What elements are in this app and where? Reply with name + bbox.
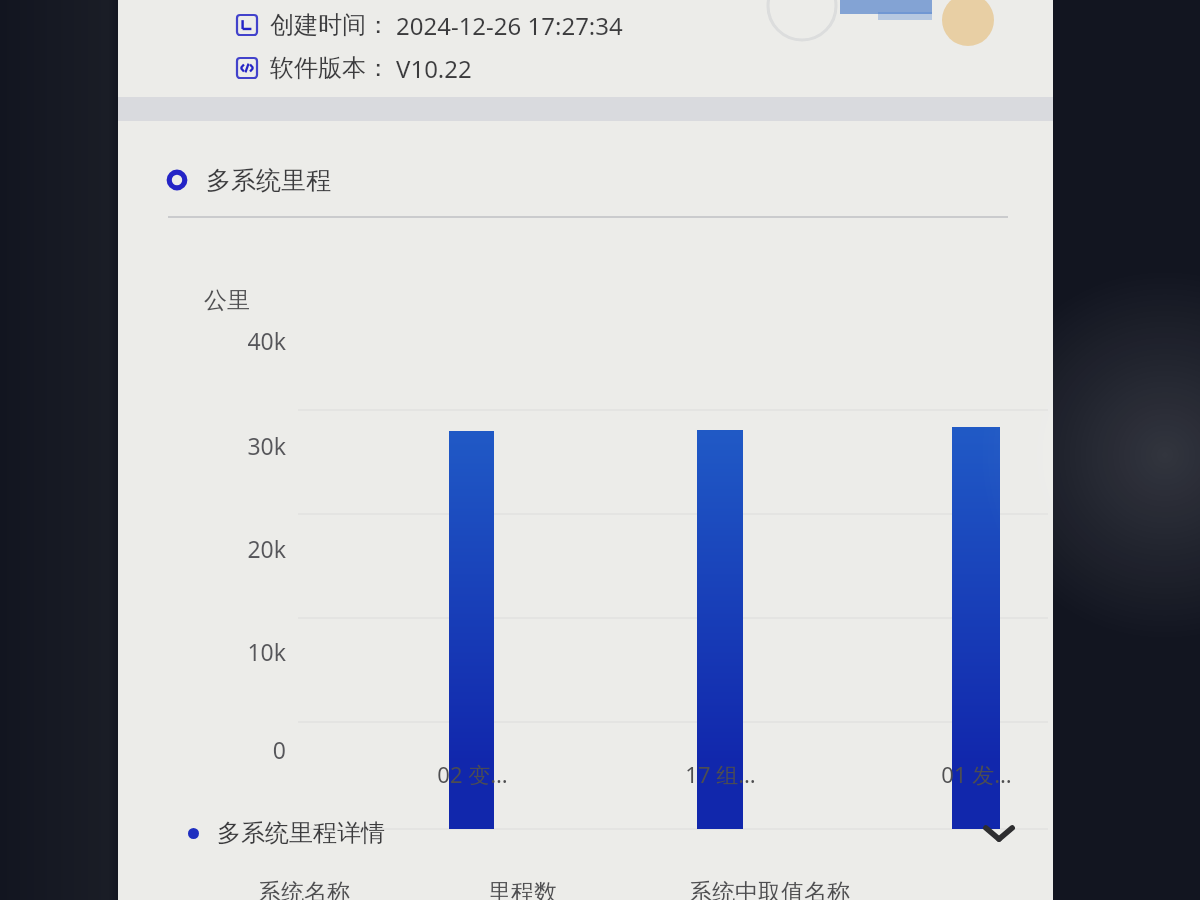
staticText: 多系统里程详情 xyxy=(217,818,385,848)
staticText: 0 xyxy=(168,734,286,765)
staticText: 02 变… xyxy=(410,759,535,789)
staticText: 17 组… xyxy=(658,759,783,789)
staticText: 里程数 xyxy=(488,878,557,900)
button[interactable]: 多系统里程详情 xyxy=(118,802,1053,864)
button[interactable]: 多系统里程 xyxy=(166,157,466,203)
other: 展开 多系统里程详情 xyxy=(971,805,1027,861)
staticText: 01 发… xyxy=(914,759,1039,789)
staticText: 10k xyxy=(168,636,286,667)
staticText: 多系统里程 xyxy=(206,165,331,196)
staticText: 公里 xyxy=(204,286,250,315)
staticText: 20k xyxy=(168,533,286,564)
staticText: 软件版本： xyxy=(270,53,390,83)
staticText: 系统名称 xyxy=(258,878,350,900)
staticText: 30k xyxy=(168,430,286,461)
staticText: V10.22 xyxy=(396,52,472,85)
staticText: 创建时间： xyxy=(270,10,390,40)
staticText: 2024-12-26 17:27:34 xyxy=(396,9,623,42)
staticText: 系统中取值名称 xyxy=(689,878,850,900)
staticText: 40k xyxy=(168,325,286,356)
